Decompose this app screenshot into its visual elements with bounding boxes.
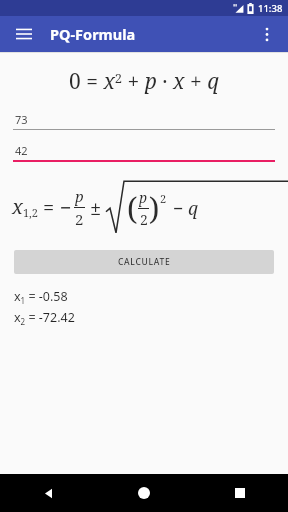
staticText: ) — [149, 188, 160, 229]
staticText: 2 — [160, 191, 167, 206]
staticText: 73 — [15, 112, 28, 127]
staticText: 42 — [15, 143, 28, 158]
button[interactable]: CALCULATE — [14, 250, 274, 274]
staticText: = — [43, 194, 55, 221]
staticText: 11:38 — [258, 2, 283, 15]
staticText: p — [75, 186, 84, 206]
staticText: 2 — [75, 209, 84, 229]
button[interactable]: 42 — [13, 143, 275, 162]
button[interactable]: Recent apps — [192, 474, 288, 512]
staticText: x1,2 — [12, 193, 38, 221]
button[interactable]: Back — [0, 474, 96, 512]
staticText: x2 = -72.42 — [14, 309, 75, 327]
button[interactable]: Open navigation drawer — [6, 16, 42, 52]
button[interactable]: More options — [250, 17, 284, 51]
button[interactable]: 73 — [13, 112, 275, 130]
staticText: p — [139, 188, 148, 207]
staticText: 2 — [140, 210, 148, 229]
button[interactable]: Home — [96, 474, 192, 512]
staticText: q — [188, 196, 199, 221]
staticText: PQ-Formula — [50, 24, 136, 44]
staticText: ( — [127, 188, 138, 229]
staticText: − — [60, 194, 72, 221]
staticText: − — [173, 196, 184, 221]
staticText: ± — [90, 194, 102, 221]
staticText: 0 = x2 + p · x + q — [69, 67, 219, 96]
staticText: CALCULATE — [118, 256, 171, 268]
staticText: x1 = -0.58 — [14, 288, 68, 306]
